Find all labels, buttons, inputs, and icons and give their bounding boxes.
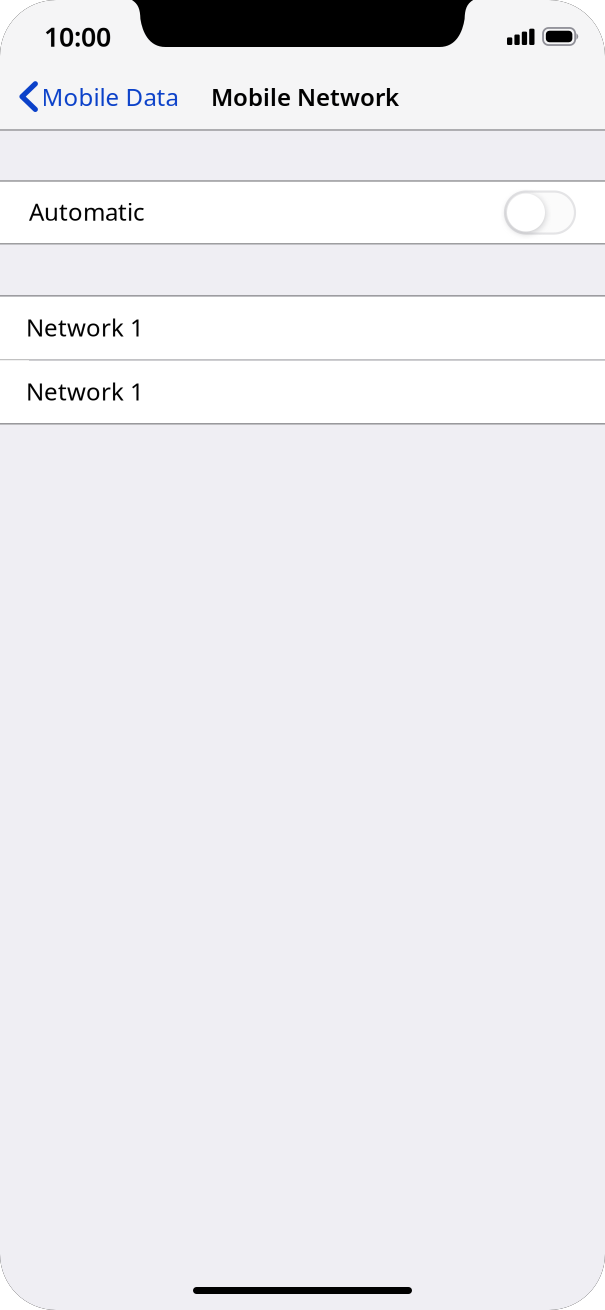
button[interactable]: Back to Mobile Data [0, 83, 190, 110]
staticText: 10:00 [44, 19, 111, 54]
staticText: Automatic [29, 196, 145, 227]
button[interactable]: Network 1 [0, 297, 605, 359]
staticText: Network 1 [26, 375, 144, 407]
staticText: Network 1 [26, 311, 144, 343]
staticText: Mobile Data [41, 81, 178, 113]
button[interactable]: Network 1 [0, 361, 605, 423]
staticText: Mobile Network [211, 81, 399, 113]
button[interactable]: Automatic [505, 191, 575, 233]
